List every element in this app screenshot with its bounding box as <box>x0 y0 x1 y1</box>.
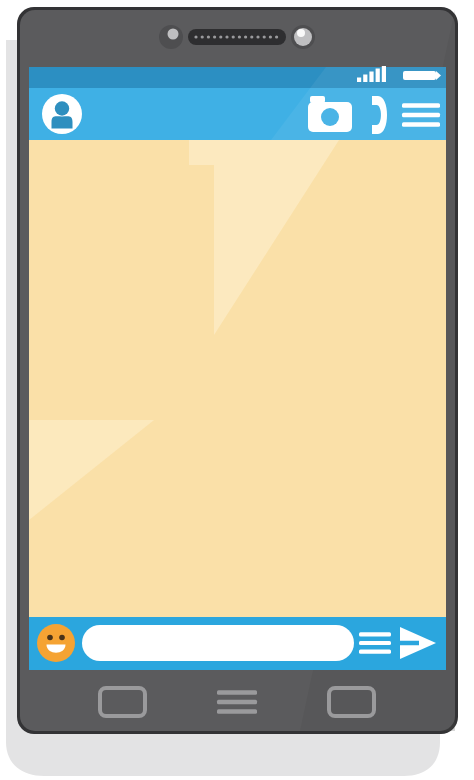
button[interactable]: Profile <box>40 93 82 135</box>
button[interactable]: Camera <box>308 96 352 134</box>
button[interactable]: Call <box>360 94 398 136</box>
button[interactable]: Send <box>396 624 438 662</box>
button[interactable]: Menu <box>209 682 265 718</box>
button[interactable]: Options <box>358 626 392 660</box>
button[interactable]: Back <box>323 682 379 718</box>
button[interactable]: Menu <box>400 96 442 134</box>
button[interactable]: Recents <box>95 682 151 718</box>
button[interactable]: Emoji <box>36 623 76 663</box>
button[interactable]: Message input <box>82 624 354 662</box>
